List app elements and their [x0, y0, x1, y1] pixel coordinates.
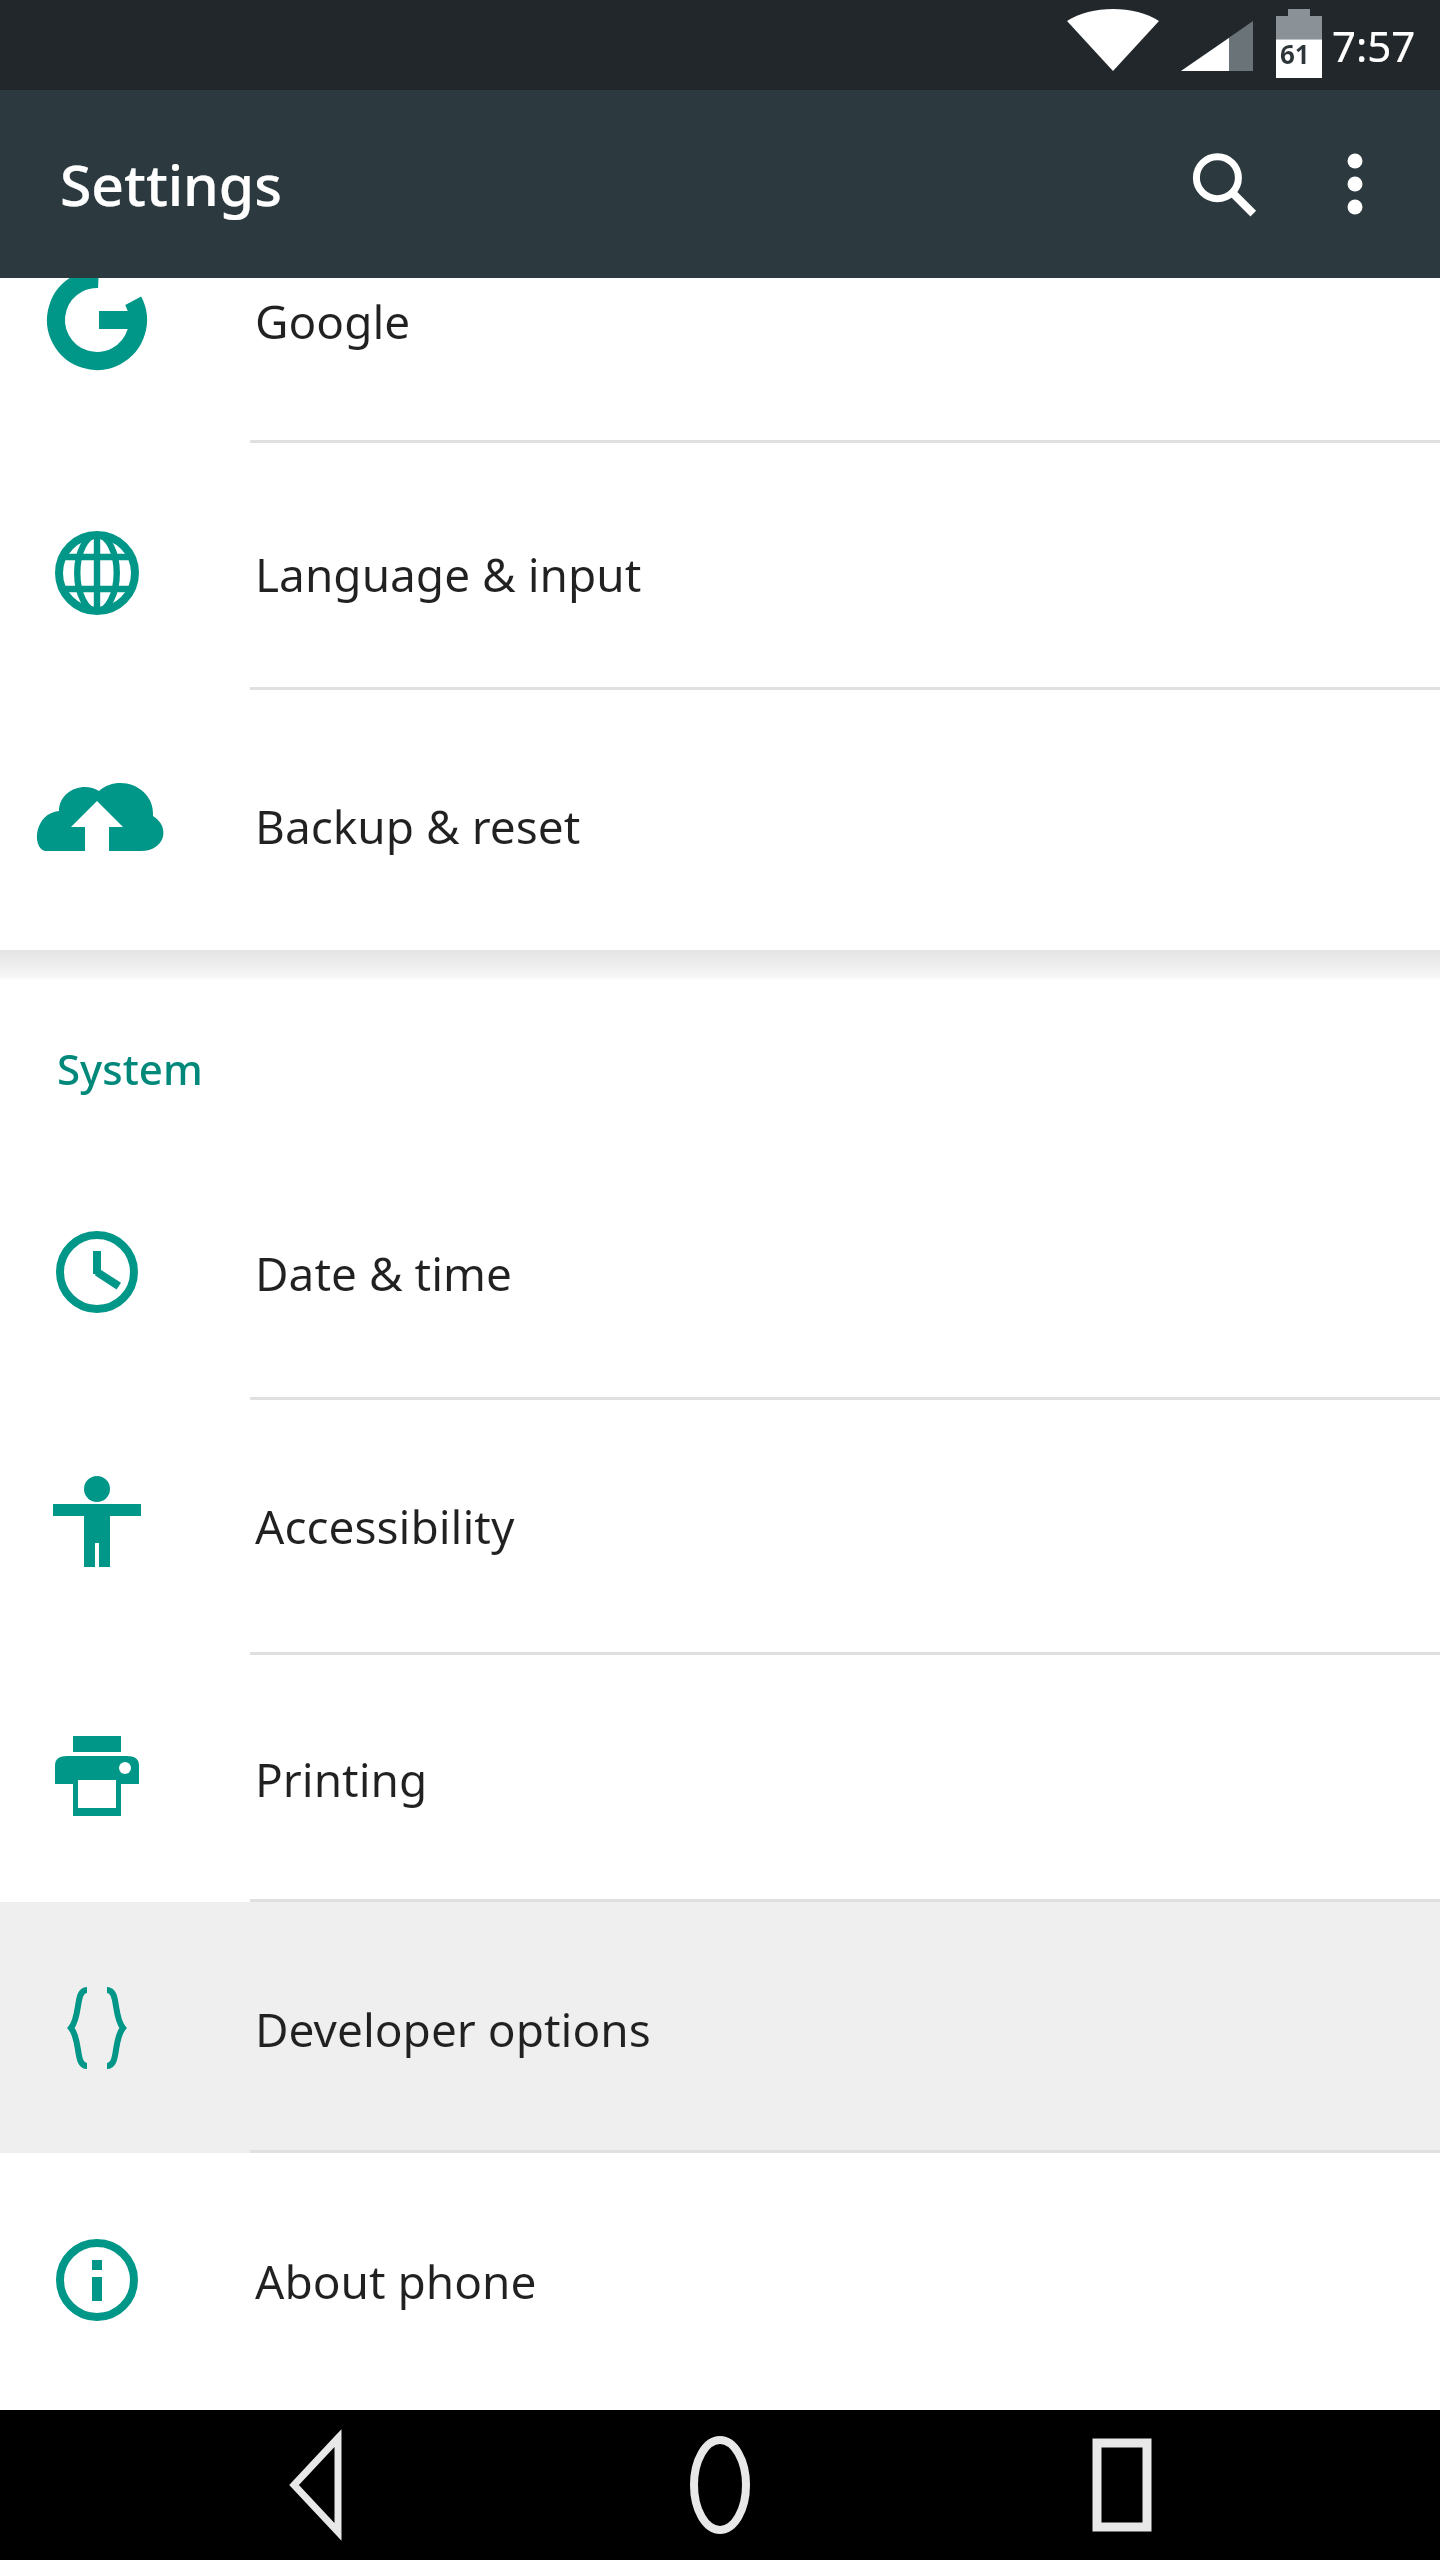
staticText: Google: [255, 290, 411, 353]
button[interactable]: Search: [1158, 119, 1288, 249]
staticText: 7:57: [1332, 17, 1416, 74]
button[interactable]: Printing: [0, 1655, 1440, 1902]
staticText: Printing: [255, 1748, 428, 1811]
staticText: Developer options: [255, 1998, 651, 2061]
staticText: Accessibility: [255, 1495, 515, 1558]
button[interactable]: Recent apps: [1022, 2410, 1222, 2560]
button[interactable]: Accessibility: [0, 1400, 1440, 1655]
button[interactable]: Backup & reset: [0, 690, 1440, 950]
button[interactable]: Language & input: [0, 443, 1440, 690]
button[interactable]: About phone: [0, 2153, 1440, 2410]
staticText: About phone: [255, 2250, 537, 2313]
staticText: Backup & reset: [255, 795, 581, 858]
staticText: Date & time: [255, 1242, 512, 1305]
staticText: 61: [1280, 36, 1310, 71]
staticText: Language & input: [255, 543, 642, 606]
button[interactable]: Developer options: [0, 1902, 1440, 2153]
staticText: Settings: [60, 145, 282, 223]
button[interactable]: Home: [620, 2410, 820, 2560]
button[interactable]: Google: [0, 190, 1440, 443]
button[interactable]: Back: [220, 2410, 420, 2560]
button[interactable]: Date & time: [0, 1148, 1440, 1400]
staticText: System: [57, 1040, 203, 1097]
button[interactable]: More options: [1290, 119, 1420, 249]
